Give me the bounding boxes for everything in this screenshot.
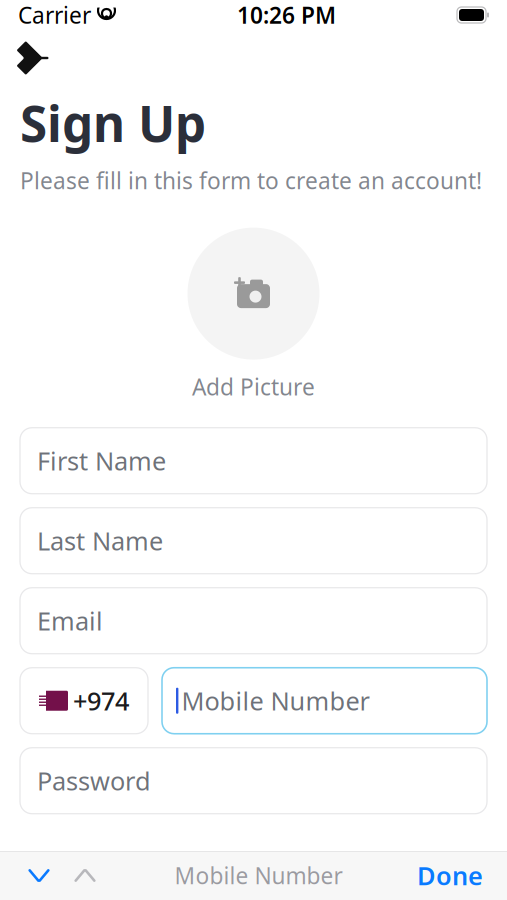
button[interactable]: +974 — [20, 668, 148, 734]
button[interactable]: Done — [409, 851, 491, 899]
staticText: 10:26 PM — [237, 0, 336, 30]
button[interactable]: Next field — [62, 851, 108, 899]
staticText: Please fill in this form to create an ac… — [20, 165, 482, 196]
staticText: +974 — [73, 684, 129, 717]
staticText: Carrier — [18, 0, 91, 30]
button[interactable]: Back — [12, 36, 60, 80]
staticText: Mobile Number — [174, 860, 342, 890]
staticText: Mobile Number — [181, 684, 369, 717]
button[interactable]: Previous field — [16, 851, 62, 899]
staticText: First Name — [37, 444, 166, 477]
staticText: Sign Up — [20, 90, 206, 155]
staticText: Password — [37, 764, 151, 797]
button[interactable]: Password — [20, 748, 487, 814]
staticText: Last Name — [37, 524, 163, 557]
button[interactable]: Mobile Number — [162, 668, 487, 734]
staticText: Add Picture — [192, 372, 315, 402]
button[interactable]: Add Picture — [0, 228, 507, 402]
button[interactable]: First Name — [20, 428, 487, 494]
button[interactable]: Email — [20, 588, 487, 654]
staticText: Done — [417, 859, 483, 892]
staticText: Email — [37, 604, 103, 637]
button[interactable]: Last Name — [20, 508, 487, 574]
